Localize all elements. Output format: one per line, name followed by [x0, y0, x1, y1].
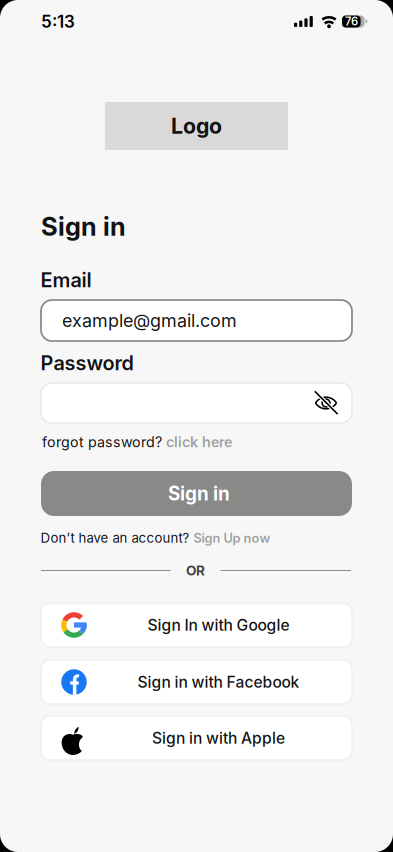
button[interactable]: Sign In with Google [41, 603, 352, 647]
staticText: 5:13 [41, 11, 75, 32]
staticText: 76 [345, 15, 358, 28]
staticText: Password [40, 351, 133, 375]
button[interactable]: Sign in with Facebook [41, 660, 352, 704]
button[interactable]: Show password [311, 388, 341, 418]
staticText: Sign in [168, 482, 230, 505]
button[interactable]: Sign Up now [193, 530, 270, 546]
staticText: Sign in [41, 211, 126, 242]
staticText: OR [186, 562, 205, 579]
button[interactable]: click here [166, 433, 232, 451]
staticText: forgot password? [42, 433, 162, 451]
staticText: example@gmail.com [62, 310, 237, 331]
staticText: Sign in with Facebook [137, 673, 299, 691]
staticText: Sign Up now [193, 530, 270, 546]
staticText: Logo [171, 113, 222, 139]
staticText: Don’t have an account? [40, 530, 189, 546]
staticText: Sign In with Google [147, 616, 289, 634]
staticText: click here [166, 433, 232, 451]
button[interactable]: Sign in [41, 471, 352, 516]
staticText: Email [40, 268, 91, 292]
staticText: Sign in with Apple [152, 729, 285, 747]
button[interactable]: Sign in with Apple [41, 716, 352, 760]
